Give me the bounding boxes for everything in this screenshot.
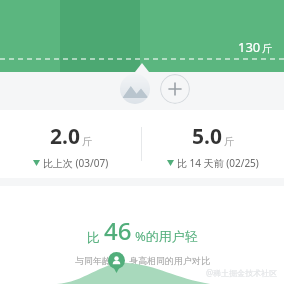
staticText: %的用户轻 bbox=[135, 227, 198, 245]
button[interactable]: Profile photo bbox=[120, 74, 150, 104]
staticText: 与同年龄段，身高相同的用户对比 bbox=[75, 255, 210, 266]
staticText: 比上次 (03/07) bbox=[43, 156, 109, 170]
other: Your position marker bbox=[108, 252, 125, 273]
staticText: 130 bbox=[238, 38, 261, 56]
button[interactable]: Add record bbox=[160, 74, 190, 104]
staticText: 斤 bbox=[262, 42, 272, 55]
staticText: 比 bbox=[87, 229, 100, 245]
button[interactable]: 5.0 bbox=[142, 110, 284, 178]
staticText: 46 bbox=[104, 214, 132, 247]
staticText: 斤 bbox=[82, 135, 92, 148]
staticText: @稀土掘金技术社区 bbox=[206, 267, 278, 278]
staticText: 斤 bbox=[224, 135, 234, 148]
staticText: 5.0 bbox=[192, 122, 222, 151]
button[interactable]: 2.0 bbox=[0, 110, 141, 178]
staticText: 2.0 bbox=[50, 122, 80, 151]
staticText: 比 14 天前 (02/25) bbox=[177, 156, 259, 170]
button[interactable] bbox=[60, 0, 140, 72]
